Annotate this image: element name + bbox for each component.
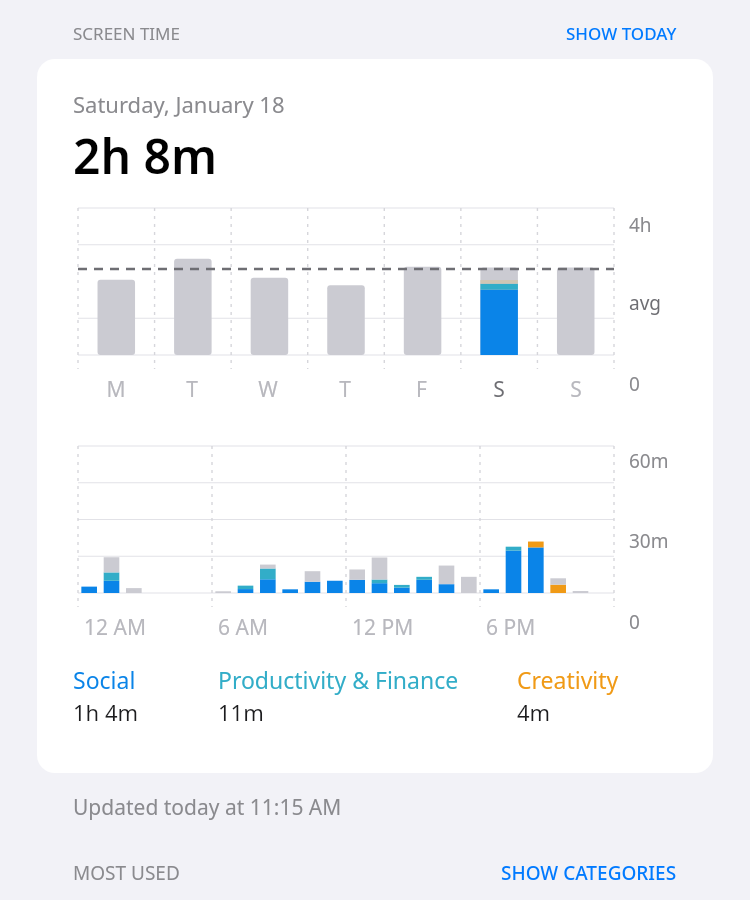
staticText: 6 AM	[218, 613, 268, 642]
button[interactable]: Social	[73, 664, 218, 727]
staticText: S	[570, 375, 582, 404]
staticText: MOST USED	[73, 860, 180, 886]
staticText: 1h 4m	[73, 697, 139, 727]
staticText: 4m	[517, 697, 551, 727]
staticText: S	[493, 375, 505, 404]
staticText: Productivity & Finance	[218, 664, 459, 695]
staticText: W	[258, 375, 278, 404]
staticText: T	[186, 375, 198, 404]
button[interactable]: Productivity & Finance	[218, 664, 517, 727]
staticText: Updated today at 11:15 AM	[73, 793, 342, 822]
staticText: SHOW TODAY	[566, 22, 677, 45]
staticText: Saturday, January 18	[73, 89, 285, 119]
staticText: M	[106, 375, 126, 404]
staticText: 30m	[629, 528, 669, 554]
staticText: 11m	[218, 697, 264, 727]
staticText: F	[416, 375, 427, 404]
staticText: 6 PM	[486, 613, 536, 642]
staticText: 4h	[629, 212, 652, 238]
button[interactable]: SHOW CATEGORIES	[501, 860, 677, 886]
staticText: avg	[629, 290, 661, 316]
button[interactable]: SHOW TODAY	[566, 22, 677, 45]
staticText: 2h 8m	[73, 123, 218, 188]
staticText: T	[339, 375, 351, 404]
staticText: Social	[73, 664, 136, 695]
staticText: 0	[629, 371, 640, 397]
button[interactable]: Saturday, January 18	[37, 59, 713, 773]
staticText: SHOW CATEGORIES	[501, 860, 677, 886]
button[interactable]: Creativity	[517, 664, 677, 727]
staticText: 12 PM	[352, 613, 414, 642]
staticText: 0	[629, 609, 640, 635]
staticText: 12 AM	[84, 613, 146, 642]
staticText: SCREEN TIME	[73, 22, 180, 45]
staticText: Creativity	[517, 664, 619, 695]
staticText: 60m	[629, 448, 669, 474]
